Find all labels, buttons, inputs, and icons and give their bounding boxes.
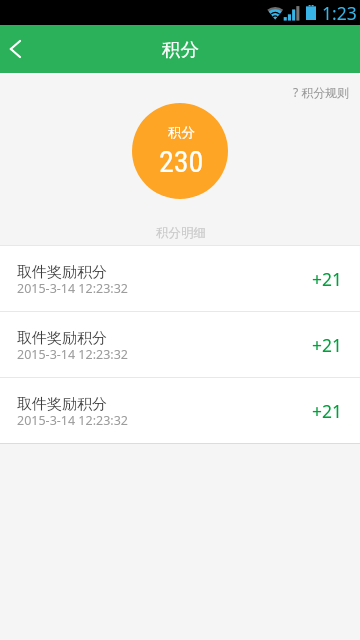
staticText: ? 积分规则 (293, 84, 350, 100)
staticText: 2015-3-14 12:23:32 (17, 346, 128, 363)
button[interactable]: 取件奖励积分 (0, 312, 360, 377)
staticText: 1:23 (322, 1, 357, 25)
staticText: +21 (312, 399, 343, 423)
staticText: +21 (312, 267, 343, 291)
staticText: 2015-3-14 12:23:32 (17, 280, 128, 297)
button[interactable]: 取件奖励积分 (0, 378, 360, 443)
staticText: 积分明细 (156, 225, 206, 241)
staticText: 2015-3-14 12:23:32 (17, 412, 128, 429)
staticText: 积分 (162, 38, 199, 61)
staticText: 取件奖励积分 (17, 395, 107, 414)
staticText: 取件奖励积分 (17, 329, 107, 348)
button[interactable]: 取件奖励积分 (0, 246, 360, 311)
staticText: 230 (159, 144, 204, 179)
staticText: 积分 (168, 124, 195, 141)
staticText: +21 (312, 333, 343, 357)
button[interactable]: Back (0, 25, 44, 73)
staticText: 取件奖励积分 (17, 263, 107, 282)
button[interactable]: ? 积分规则 (281, 79, 360, 105)
button[interactable]: 积分 (132, 103, 228, 199)
